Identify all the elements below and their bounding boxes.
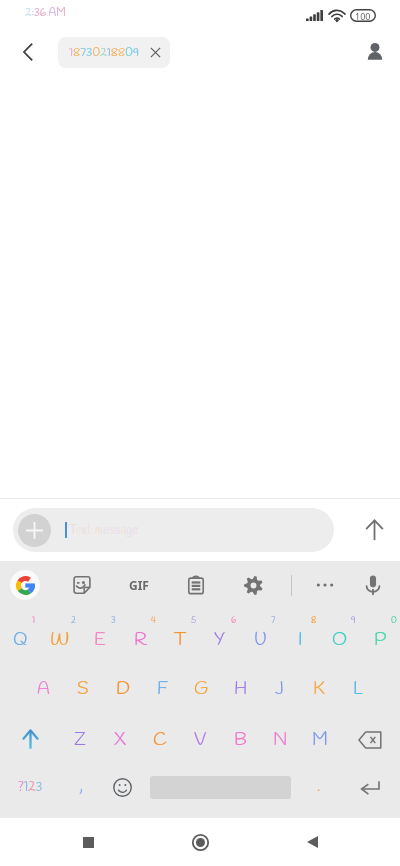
staticText: 8: [311, 615, 317, 627]
button[interactable]: 6: [200, 609, 240, 660]
button[interactable]: GIF: [122, 568, 156, 602]
staticText: T: [174, 628, 186, 653]
button[interactable]: Clipboard: [179, 568, 213, 602]
button[interactable]: G: [182, 660, 221, 711]
button[interactable]: 7: [240, 609, 280, 660]
button[interactable]: 5: [160, 609, 200, 660]
staticText: G: [194, 677, 209, 702]
button[interactable]: D: [103, 660, 143, 711]
staticText: 4: [151, 615, 156, 627]
staticText: Q: [13, 628, 28, 653]
button[interactable]: Send: [348, 499, 400, 561]
staticText: 5: [191, 615, 197, 627]
button[interactable]: Recent apps: [64, 818, 112, 866]
staticText: K: [313, 677, 325, 702]
button[interactable]: Voice input: [356, 568, 390, 602]
button[interactable]: Backspace: [340, 711, 400, 762]
button[interactable]: .: [298, 762, 339, 812]
staticText: 7: [271, 615, 276, 627]
staticText: ?123: [18, 779, 43, 796]
button[interactable]: C: [140, 711, 180, 762]
button[interactable]: 2: [40, 609, 80, 660]
button[interactable]: B: [220, 711, 260, 762]
button[interactable]: Z: [60, 711, 100, 762]
staticText: D: [116, 677, 131, 702]
button[interactable]: Contact details: [350, 28, 400, 76]
staticText: L: [353, 677, 363, 702]
button[interactable]: Stickers: [65, 568, 99, 602]
staticText: P: [374, 628, 387, 653]
staticText: R: [134, 628, 147, 653]
staticText: 18730218809: [69, 45, 139, 61]
button[interactable]: ?123: [0, 762, 61, 812]
button[interactable]: X: [100, 711, 140, 762]
staticText: B: [234, 728, 247, 753]
button[interactable]: 9: [320, 609, 360, 660]
button[interactable]: L: [338, 660, 377, 711]
button[interactable]: Home: [176, 818, 224, 866]
staticText: U: [254, 628, 267, 653]
button[interactable]: V: [180, 711, 220, 762]
staticText: ,: [80, 778, 83, 797]
staticText: X: [114, 728, 126, 753]
staticText: 3: [111, 615, 116, 627]
staticText: N: [273, 728, 288, 753]
button[interactable]: 8: [280, 609, 320, 660]
button[interactable]: ,: [61, 762, 102, 812]
staticText: W: [50, 628, 70, 653]
staticText: 6: [231, 615, 237, 627]
staticText: O: [332, 628, 348, 653]
staticText: A: [37, 677, 50, 702]
button[interactable]: 0: [360, 609, 400, 660]
button[interactable]: Text message: [13, 508, 334, 552]
staticText: .: [317, 778, 321, 797]
button[interactable]: Emoji: [102, 762, 143, 812]
button[interactable]: Keyboard settings: [236, 568, 270, 602]
staticText: M: [312, 728, 328, 753]
staticText: 1: [32, 615, 36, 627]
staticText: GIF: [129, 577, 149, 593]
staticText: 9: [351, 615, 356, 627]
button[interactable]: Google Search: [10, 570, 40, 600]
button[interactable]: Back: [0, 28, 56, 76]
button[interactable]: K: [299, 660, 338, 711]
button[interactable]: N: [260, 711, 300, 762]
button[interactable]: 18730218809: [58, 37, 170, 68]
button[interactable]: S: [63, 660, 103, 711]
staticText: 2: [71, 615, 77, 627]
staticText: I: [298, 628, 303, 653]
button[interactable]: Enter: [339, 762, 400, 812]
button[interactable]: F: [143, 660, 182, 711]
button[interactable]: Back: [288, 818, 336, 866]
staticText: V: [194, 728, 207, 753]
button[interactable]: A: [23, 660, 63, 711]
button[interactable]: H: [221, 660, 260, 711]
staticText: Y: [214, 628, 226, 653]
staticText: Text message: [69, 522, 139, 539]
staticText: 0: [391, 615, 397, 627]
button[interactable]: Shift: [0, 711, 60, 762]
button[interactable]: 3: [80, 609, 120, 660]
staticText: J: [275, 677, 284, 702]
staticText: H: [234, 677, 248, 702]
staticText: F: [157, 677, 169, 702]
staticText: C: [153, 728, 167, 753]
staticText: Z: [74, 728, 86, 753]
staticText: E: [94, 628, 106, 653]
button[interactable]: 4: [120, 609, 160, 660]
staticText: 2:36 AM: [25, 6, 66, 21]
staticText: S: [77, 677, 89, 702]
button[interactable]: More options: [308, 568, 342, 602]
button[interactable]: 1: [0, 609, 40, 660]
staticText: 100: [355, 10, 371, 22]
button[interactable]: M: [300, 711, 340, 762]
button[interactable]: J: [260, 660, 299, 711]
